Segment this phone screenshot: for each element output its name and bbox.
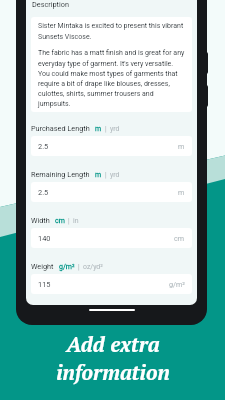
staticText: 2.5 xyxy=(38,142,49,151)
button[interactable]: yrd xyxy=(110,171,120,179)
button[interactable]: g/m² xyxy=(59,263,75,271)
button[interactable]: m xyxy=(95,171,102,179)
staticText: | xyxy=(68,217,70,225)
button[interactable]: oz/yd² xyxy=(83,263,103,271)
staticText: Sister Mintaka is excited to present thi… xyxy=(38,22,184,41)
staticText: g/m² xyxy=(169,280,185,288)
staticText: | xyxy=(105,125,107,133)
button[interactable]: Weight xyxy=(31,262,54,271)
button[interactable]: Sister Mintaka is excited to present thi… xyxy=(31,17,192,112)
staticText: 115 xyxy=(38,280,51,289)
staticText: Description xyxy=(32,0,69,9)
staticText: m xyxy=(178,188,185,196)
button[interactable]: yrd xyxy=(110,125,120,133)
button[interactable]: Purchased Length xyxy=(31,124,90,133)
staticText: m xyxy=(178,142,185,150)
staticText: information xyxy=(56,358,170,386)
staticText: 140 xyxy=(38,234,51,243)
staticText: 2.5 xyxy=(38,188,49,197)
button[interactable]: 115 xyxy=(31,274,192,294)
staticText: | xyxy=(105,171,107,179)
staticText: cm xyxy=(174,234,185,242)
button[interactable]: 2.5 xyxy=(31,136,192,156)
button[interactable]: Remaining Length xyxy=(31,170,90,179)
button[interactable]: m xyxy=(95,125,102,133)
staticText: The fabric has a matt finish and is grea… xyxy=(38,49,185,108)
staticText: Add extra xyxy=(66,330,160,358)
button[interactable]: Width xyxy=(31,216,50,225)
button[interactable]: in xyxy=(73,217,79,225)
staticText: | xyxy=(78,263,80,271)
button[interactable]: cm xyxy=(55,217,65,225)
button[interactable]: 2.5 xyxy=(31,182,192,202)
button[interactable]: 140 xyxy=(31,228,192,248)
